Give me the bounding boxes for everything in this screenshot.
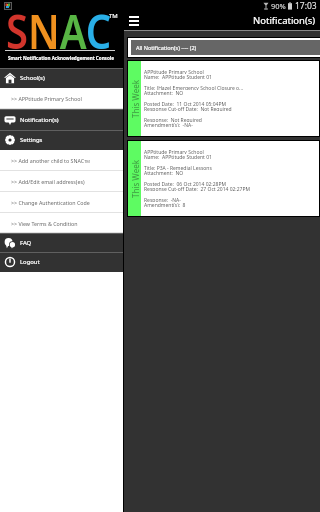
staticText: Name: APPtitude Student 01: [144, 74, 212, 79]
staticText: Response Cut-off Date: Not Required: [144, 106, 232, 111]
staticText: Posted Date: 06 Oct 2014 02:28PM: [144, 181, 226, 186]
button[interactable]: >> Add/Edit email address(es): [0, 171, 123, 192]
staticText: >> View Terms & Condition: [11, 220, 78, 227]
staticText: Attachment: NO: [144, 90, 184, 95]
staticText: Title: P3A - Remedial Lessons: [144, 165, 212, 170]
staticText: Amendment(s): 8: [144, 202, 186, 207]
button[interactable]: All Notification(s) ---- (2): [131, 40, 320, 55]
staticText: Name: APPtitude Student 01: [144, 154, 212, 159]
button[interactable]: >> Change Authentication Code: [0, 192, 123, 213]
staticText: This Week: [130, 160, 140, 198]
button[interactable]: Notification(s): [0, 109, 123, 130]
staticText: Settings: [20, 136, 43, 144]
staticText: Smart Notification Acknowledgement Conso…: [8, 55, 114, 61]
staticText: FAQ: [20, 239, 32, 247]
button[interactable]: Open navigation drawer: [124, 12, 144, 30]
staticText: 17:03: [295, 0, 317, 12]
staticText: Title: (Haze) Emergency School Closure o…: [144, 85, 244, 90]
staticText: >> Add another child to SNACTM: [11, 157, 90, 164]
button[interactable]: Settings: [0, 130, 123, 150]
staticText: Response: -NA-: [144, 197, 181, 202]
staticText: >> Change Authentication Code: [11, 199, 90, 206]
staticText: >> APPtitude Primary School: [11, 95, 82, 102]
staticText: TM: [109, 12, 118, 20]
staticText: APPtitude Primary School: [144, 69, 204, 74]
staticText: SNAC: [6, 0, 112, 62]
staticText: Attachment: NO: [144, 170, 184, 175]
staticText: Posted Date: 11 Oct 2014 05:04PM: [144, 101, 226, 106]
staticText: Amendment(s): -NA-: [144, 122, 193, 127]
button[interactable]: School(s): [0, 68, 123, 88]
staticText: Response Cut-off Date: 27 Oct 2014 02:27…: [144, 186, 250, 191]
button[interactable]: FAQ: [0, 233, 123, 252]
staticText: >> Add/Edit email address(es): [11, 178, 85, 185]
staticText: Logout: [20, 258, 40, 266]
staticText: All Notification(s) ---- (2): [136, 44, 197, 51]
staticText: This Week: [130, 80, 140, 118]
staticText: 90%: [271, 1, 286, 11]
staticText: School(s): [20, 74, 45, 82]
button[interactable]: >> View Terms & Condition: [0, 213, 123, 233]
staticText: Notification(s): [20, 116, 59, 124]
staticText: Response: Not Required: [144, 117, 202, 122]
button[interactable]: This Week: [128, 61, 319, 136]
button[interactable]: Logout: [0, 252, 123, 272]
staticText: APPtitude Primary School: [144, 149, 204, 154]
staticText: Notification(s): [253, 14, 316, 27]
button[interactable]: This Week: [128, 141, 319, 216]
button[interactable]: >> Add another child to SNACTM: [0, 150, 123, 171]
button[interactable]: >> APPtitude Primary School: [0, 88, 123, 109]
